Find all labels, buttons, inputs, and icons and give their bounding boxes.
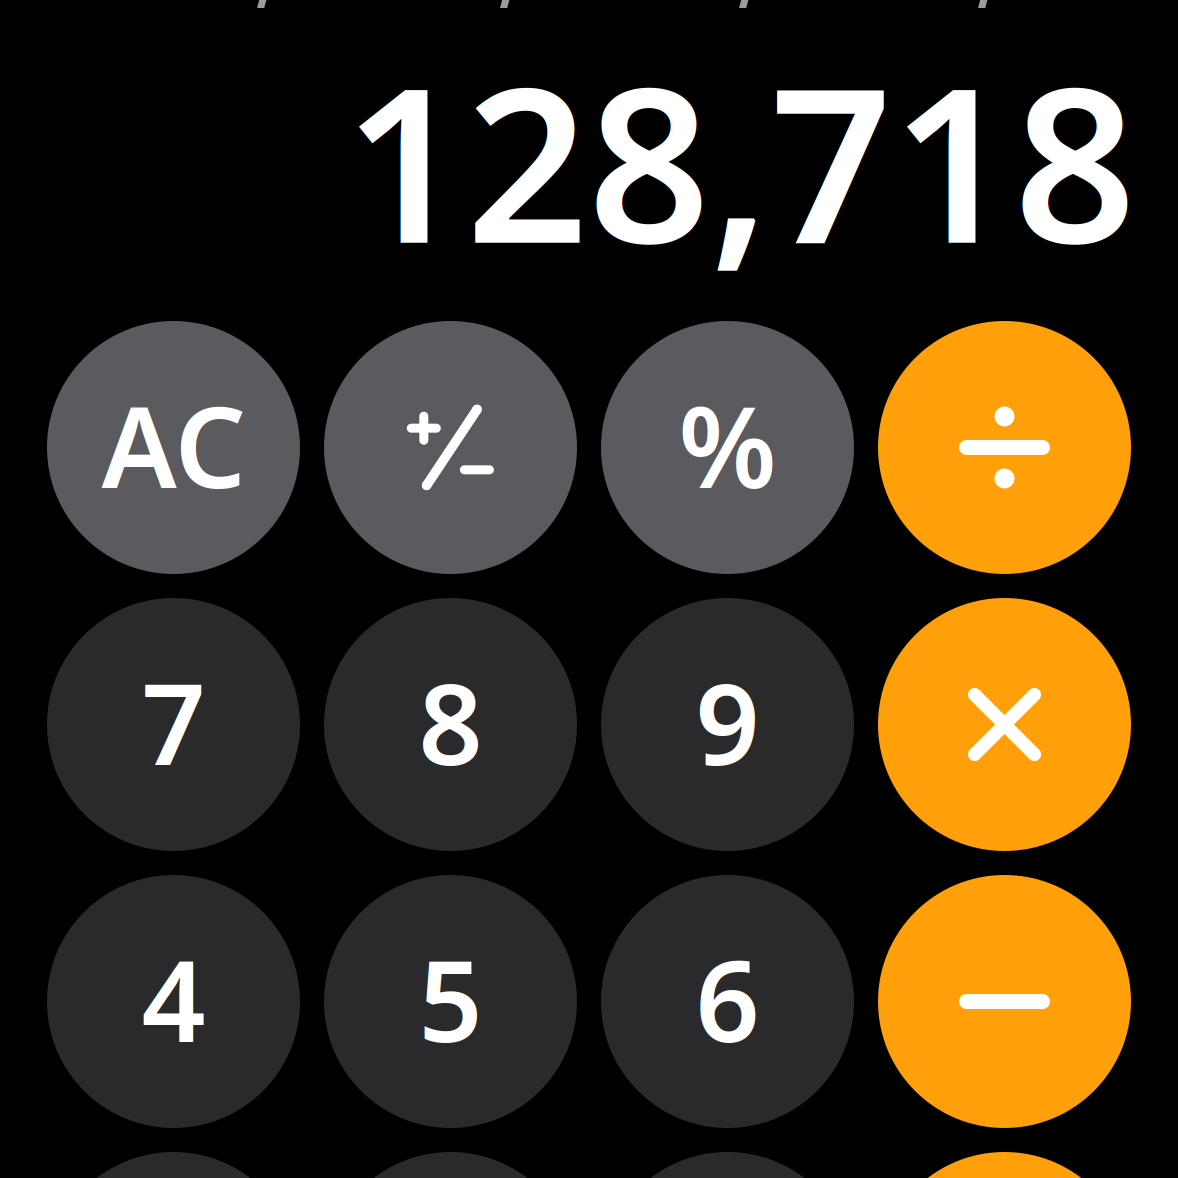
staticText: 8	[418, 647, 482, 796]
staticText: AC	[101, 370, 245, 519]
button[interactable]: 9	[601, 598, 854, 851]
staticText: 5	[418, 924, 482, 1073]
button[interactable]: 2	[324, 1152, 577, 1178]
button[interactable]: 6	[601, 875, 854, 1128]
button[interactable]: 1	[47, 1152, 300, 1178]
button[interactable]: AC	[47, 321, 300, 574]
button[interactable]: %	[601, 321, 854, 574]
button[interactable]: 7	[47, 598, 300, 851]
button[interactable]: Plus Minus	[324, 321, 577, 574]
button[interactable]: 3	[601, 1152, 854, 1178]
button[interactable]: Multiply	[878, 598, 1131, 851]
button[interactable]: 8	[324, 598, 577, 851]
staticText: 9	[695, 647, 759, 796]
staticText: 6	[695, 924, 759, 1073]
staticText: 4	[141, 924, 205, 1073]
button[interactable]: Minus	[878, 875, 1131, 1128]
button[interactable]: Divide	[878, 321, 1131, 574]
button[interactable]: 4	[47, 875, 300, 1128]
staticText: 7	[141, 647, 205, 796]
staticText: %	[678, 370, 776, 519]
button[interactable]: 5	[324, 875, 577, 1128]
staticText: 128,718	[344, 18, 1136, 302]
button[interactable]: Plus	[878, 1152, 1131, 1178]
